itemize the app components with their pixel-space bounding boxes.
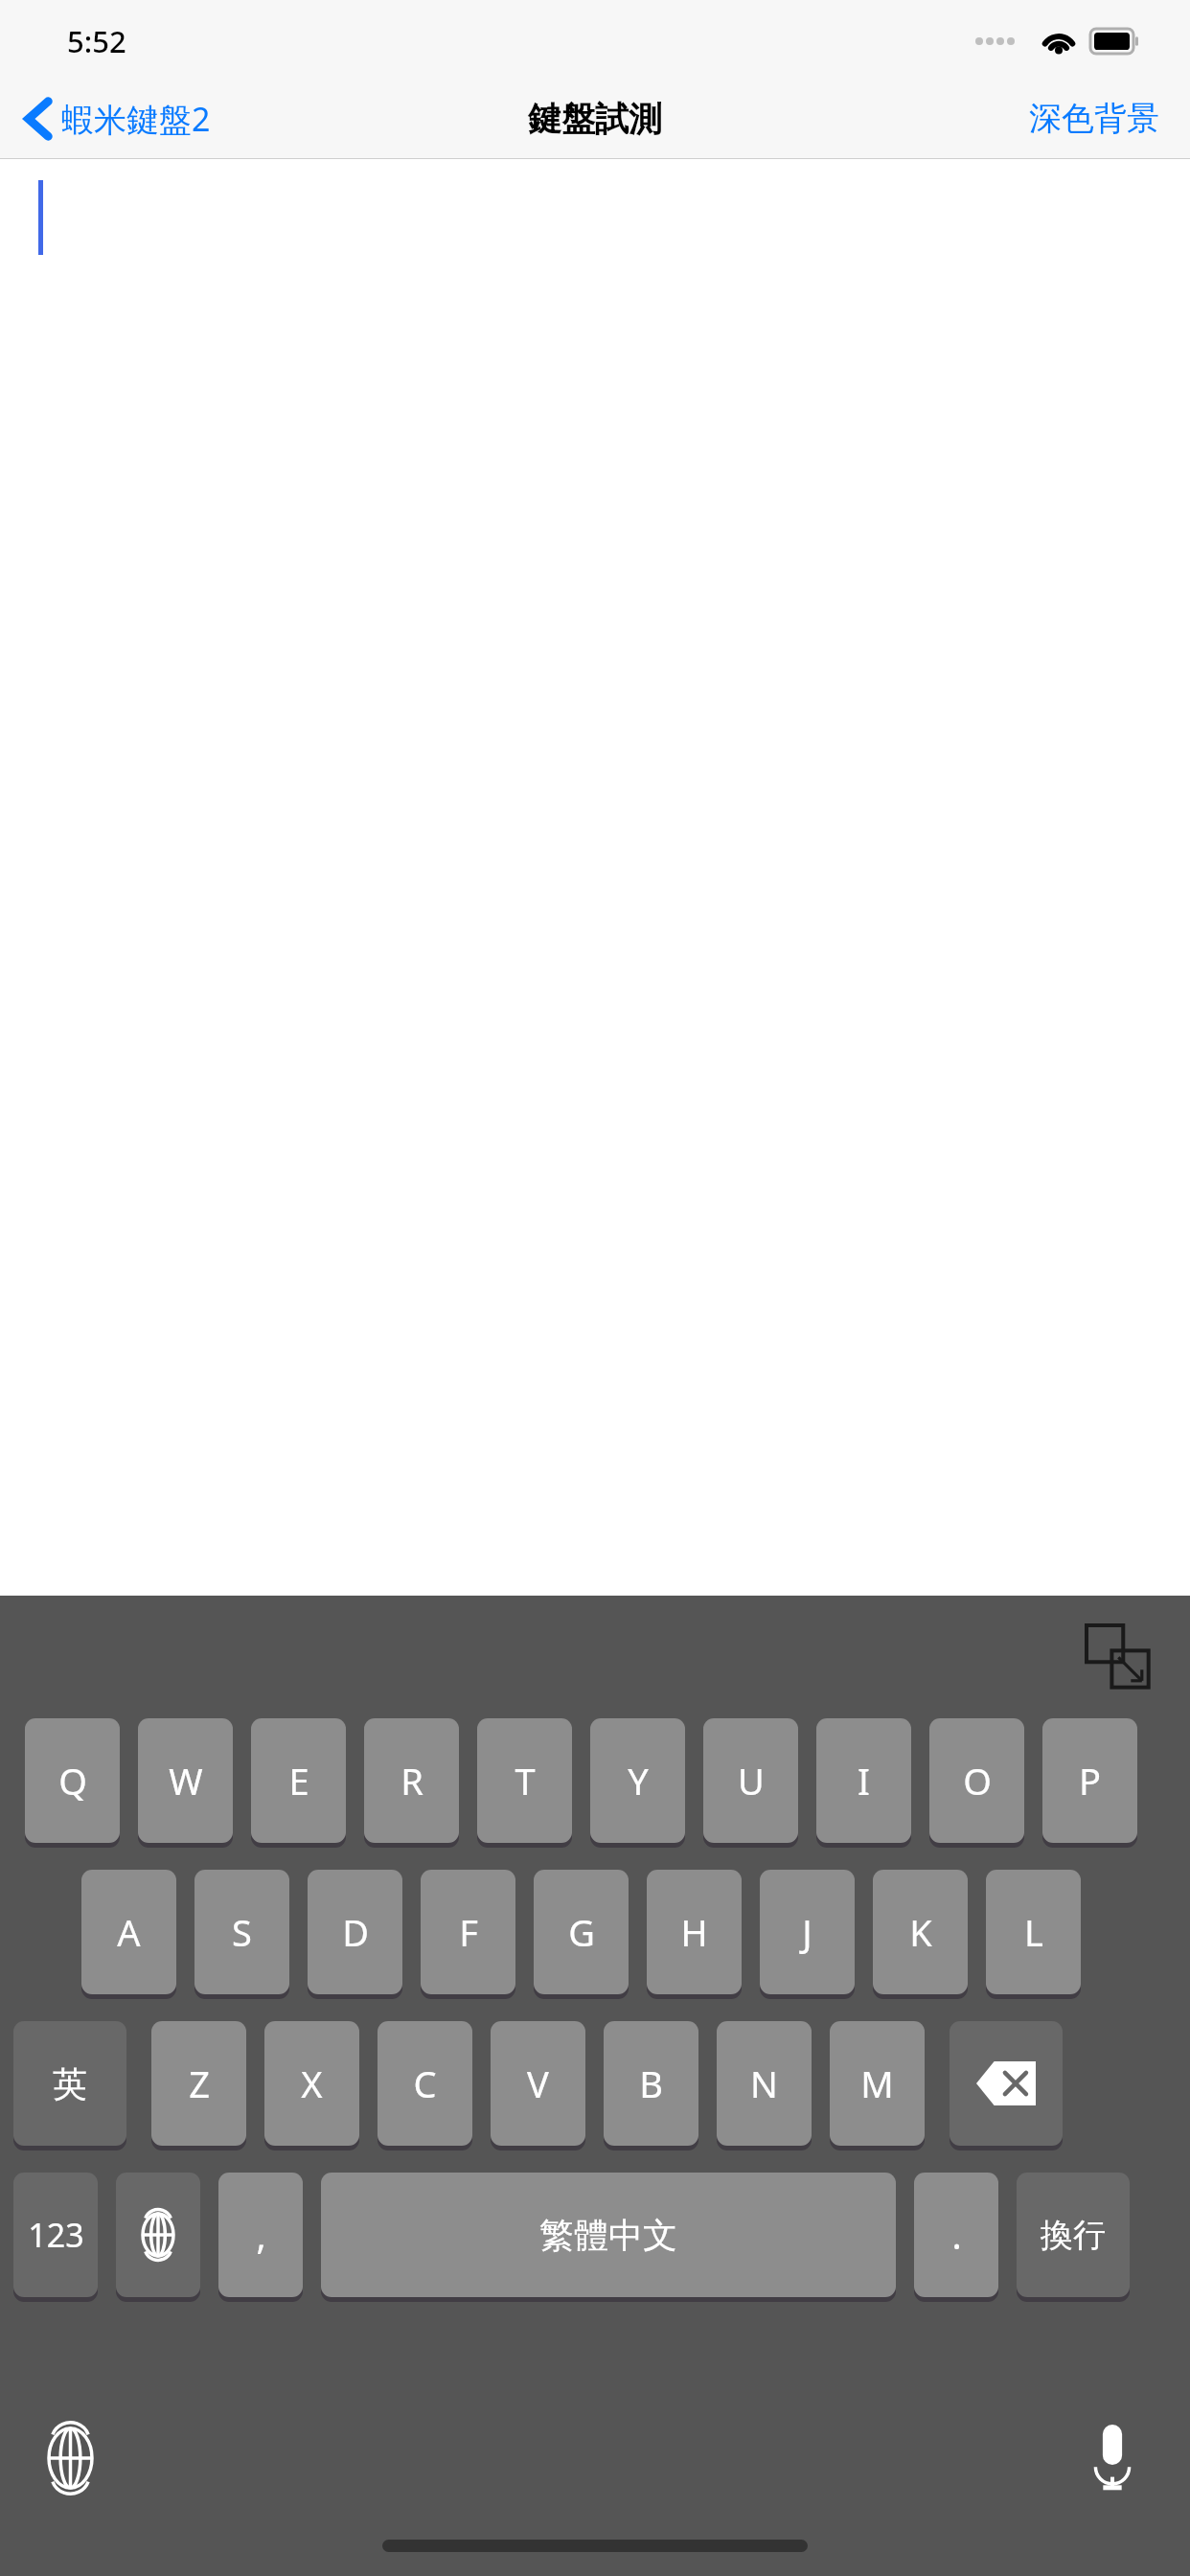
button[interactable]: Backspace [950, 2021, 1063, 2150]
button[interactable]: Switch keyboard [116, 2173, 200, 2302]
button[interactable]: Y [590, 1718, 685, 1848]
button[interactable]: . [914, 2173, 998, 2302]
staticText: L [1024, 1907, 1043, 1957]
staticText: J [802, 1907, 812, 1957]
button[interactable]: V [491, 2021, 585, 2150]
staticText: H [680, 1907, 708, 1957]
button[interactable]: E [251, 1718, 346, 1848]
staticText: 英 [53, 2062, 87, 2105]
staticText: M [860, 2058, 894, 2108]
staticText: C [413, 2058, 437, 2108]
staticText: P [1079, 1756, 1101, 1805]
staticText: B [639, 2058, 663, 2108]
button[interactable]: U [703, 1718, 798, 1848]
button[interactable]: N [717, 2021, 812, 2150]
staticText: S [232, 1907, 252, 1957]
button[interactable]: M [830, 2021, 925, 2150]
button[interactable]: S [195, 1870, 289, 1999]
button[interactable]: L [986, 1870, 1081, 1999]
staticText: U [738, 1756, 765, 1805]
button[interactable]: 蝦米鍵盤2 [23, 96, 211, 142]
button[interactable]: I [816, 1718, 911, 1848]
staticText: E [288, 1756, 309, 1805]
staticText: G [568, 1907, 595, 1957]
staticText: O [963, 1756, 992, 1805]
staticText: K [909, 1907, 932, 1957]
button[interactable]: Dictation [1079, 2425, 1146, 2492]
button[interactable]: X [264, 2021, 359, 2150]
staticText: A [117, 1907, 141, 1957]
staticText: 蝦米鍵盤2 [61, 97, 211, 141]
staticText: 繁體中文 [539, 2214, 677, 2257]
staticText: 123 [28, 2213, 84, 2257]
button[interactable]: T [477, 1718, 572, 1848]
button[interactable]: B [604, 2021, 698, 2150]
staticText: Q [58, 1756, 87, 1805]
button[interactable]: P [1042, 1718, 1137, 1848]
button[interactable]: G [534, 1870, 629, 1999]
button[interactable]: F [421, 1870, 515, 1999]
button[interactable]: Z [151, 2021, 246, 2150]
staticText: R [400, 1756, 423, 1805]
button[interactable]: R [364, 1718, 459, 1848]
staticText: 5:52 [67, 21, 126, 61]
staticText: 鍵盤試測 [528, 98, 662, 140]
button[interactable]: 換行 [1017, 2173, 1130, 2302]
staticText: . [951, 2210, 962, 2260]
staticText: V [527, 2058, 549, 2108]
button[interactable]: 深色背景 [1029, 98, 1159, 139]
button[interactable]: O [929, 1718, 1024, 1848]
staticText: N [750, 2058, 778, 2108]
button[interactable]: W [138, 1718, 233, 1848]
button[interactable]: , [218, 2173, 303, 2302]
staticText: W [169, 1756, 203, 1805]
staticText: Z [189, 2058, 210, 2108]
button[interactable]: K [873, 1870, 968, 1999]
button[interactable]: 英 [13, 2021, 126, 2150]
staticText: 換行 [1041, 2215, 1106, 2256]
button[interactable]: 繁體中文 [321, 2173, 896, 2302]
button[interactable]: Change language [36, 2425, 103, 2492]
staticText: Y [628, 1756, 649, 1805]
button[interactable]: H [647, 1870, 742, 1999]
staticText: D [342, 1907, 369, 1957]
staticText: F [459, 1907, 478, 1957]
staticText: T [515, 1756, 536, 1805]
staticText: I [858, 1756, 870, 1805]
button[interactable]: 123 [13, 2173, 98, 2302]
button[interactable]: Resize keyboard [1087, 1625, 1150, 1689]
button[interactable]: J [760, 1870, 855, 1999]
staticText: X [301, 2058, 323, 2108]
button[interactable]: C [378, 2021, 472, 2150]
button[interactable]: Q [25, 1718, 120, 1848]
staticText: , [256, 2210, 266, 2260]
button[interactable]: D [308, 1870, 402, 1999]
button[interactable]: A [81, 1870, 176, 1999]
